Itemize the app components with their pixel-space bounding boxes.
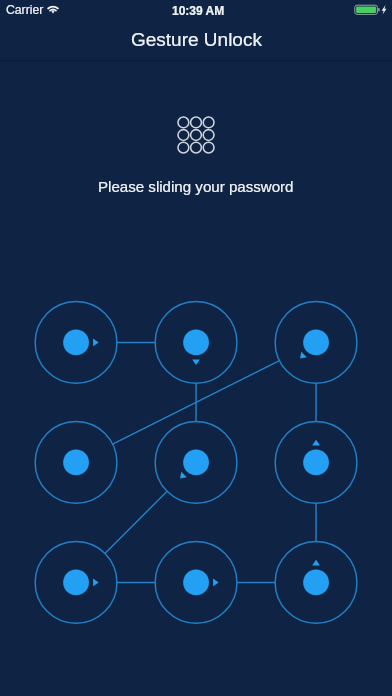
staticText: Please sliding your password <box>98 178 294 195</box>
button[interactable]: Pattern dot 9 <box>275 542 357 624</box>
button[interactable]: Pattern dot 8 <box>155 542 237 624</box>
button[interactable]: Pattern dot 2 <box>155 302 237 384</box>
button[interactable]: Pattern dot 1 <box>35 302 117 384</box>
button[interactable]: Pattern dot 3 <box>275 302 357 384</box>
button[interactable]: Pattern dot 4 <box>35 422 117 504</box>
staticText: 10:39 AM <box>172 4 225 17</box>
button[interactable]: Pattern dot 7 <box>35 542 117 624</box>
button[interactable]: Pattern dot 5 <box>155 422 237 504</box>
button[interactable]: Pattern dot 6 <box>275 422 357 504</box>
staticText: Gesture Unlock <box>131 29 262 50</box>
staticText: Carrier <box>6 3 44 17</box>
